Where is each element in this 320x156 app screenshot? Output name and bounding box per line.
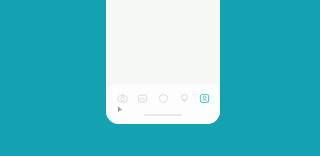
button[interactable]: Ideas	[175, 87, 193, 109]
button[interactable]: Gallery	[133, 87, 151, 109]
button[interactable]: Shield	[154, 87, 172, 109]
button[interactable]: Profile	[195, 87, 213, 109]
button[interactable]: Camera	[113, 87, 131, 109]
